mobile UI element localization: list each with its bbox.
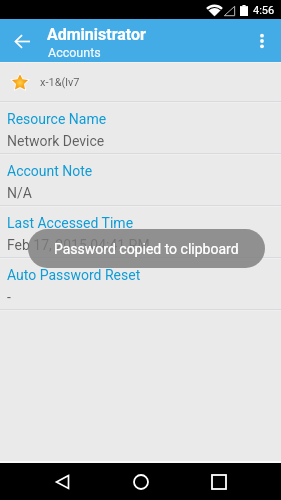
staticText: Accounts: [48, 45, 101, 60]
staticText: Account Note: [7, 163, 93, 179]
button[interactable]: Account Note: [0, 155, 281, 205]
button[interactable]: Back: [0, 21, 40, 61]
staticText: -: [7, 289, 11, 305]
staticText: Network Device: [7, 133, 105, 149]
button[interactable]: More options: [243, 22, 281, 60]
button[interactable]: Resource Name: [0, 103, 281, 153]
staticText: N/A: [7, 185, 32, 201]
button[interactable]: Last Accessed Time: [0, 207, 281, 257]
button[interactable]: Auto Password Reset: [0, 259, 281, 309]
staticText: 4:56: [253, 4, 275, 17]
button[interactable]: Recents: [198, 463, 239, 500]
button[interactable]: Home: [120, 463, 161, 500]
button[interactable]: x-1&(lv7: [0, 63, 281, 101]
staticText: Feb 17, 2015 04:41 PM: [7, 237, 150, 253]
button[interactable]: Back: [42, 463, 83, 500]
staticText: Last Accessed Time: [7, 215, 134, 231]
staticText: Auto Password Reset: [7, 267, 141, 283]
staticText: Password copied to clipboard: [54, 241, 239, 257]
staticText: Administrator: [47, 25, 146, 44]
staticText: Resource Name: [7, 111, 107, 127]
staticText: x-1&(lv7: [40, 76, 80, 89]
